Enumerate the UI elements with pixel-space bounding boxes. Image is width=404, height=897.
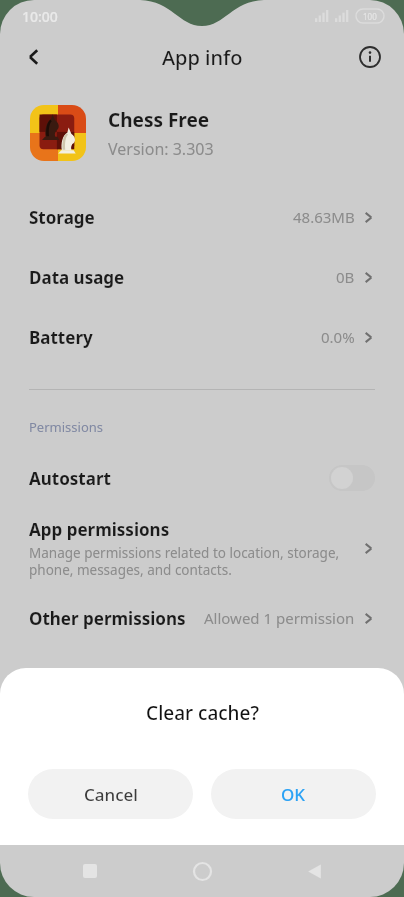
- button[interactable]: Back: [292, 849, 336, 893]
- staticText: Data usage: [29, 266, 336, 289]
- staticText: Storage: [29, 206, 293, 229]
- staticText: Cancel: [84, 783, 138, 806]
- button[interactable]: App details: [348, 35, 392, 79]
- staticText: Version: 3.303: [108, 138, 214, 160]
- staticText: Clear cache?: [146, 700, 259, 726]
- button[interactable]: Other permissions: [0, 601, 404, 635]
- button[interactable]: Data usage: [0, 247, 404, 307]
- staticText: 10:00: [22, 7, 58, 26]
- staticText: Manage permissions related to location, …: [29, 544, 340, 579]
- staticText: Battery: [29, 326, 321, 349]
- staticText: 0B: [336, 267, 355, 287]
- staticText: Chess Free: [108, 107, 210, 133]
- button[interactable]: OK: [211, 769, 376, 819]
- button[interactable]: Autostart: [0, 458, 404, 498]
- button[interactable]: Home: [180, 849, 224, 893]
- staticText: 100: [363, 11, 377, 22]
- staticText: OK: [281, 783, 306, 806]
- button[interactable]: Back: [12, 35, 56, 79]
- staticText: App permissions: [29, 518, 170, 541]
- staticText: Autostart: [29, 467, 329, 490]
- button[interactable]: Cancel: [28, 769, 193, 819]
- button[interactable]: Storage: [0, 187, 404, 247]
- staticText: 48.63MB: [293, 207, 355, 227]
- staticText: Other permissions: [29, 607, 204, 630]
- staticText: 0.0%: [321, 327, 355, 347]
- staticText: Allowed 1 permission: [204, 608, 355, 628]
- button[interactable]: App permissions: [0, 516, 404, 581]
- button[interactable]: Recents: [68, 849, 112, 893]
- staticText: Permissions: [29, 418, 104, 436]
- staticText: App info: [162, 44, 243, 71]
- button[interactable]: Battery: [0, 307, 404, 367]
